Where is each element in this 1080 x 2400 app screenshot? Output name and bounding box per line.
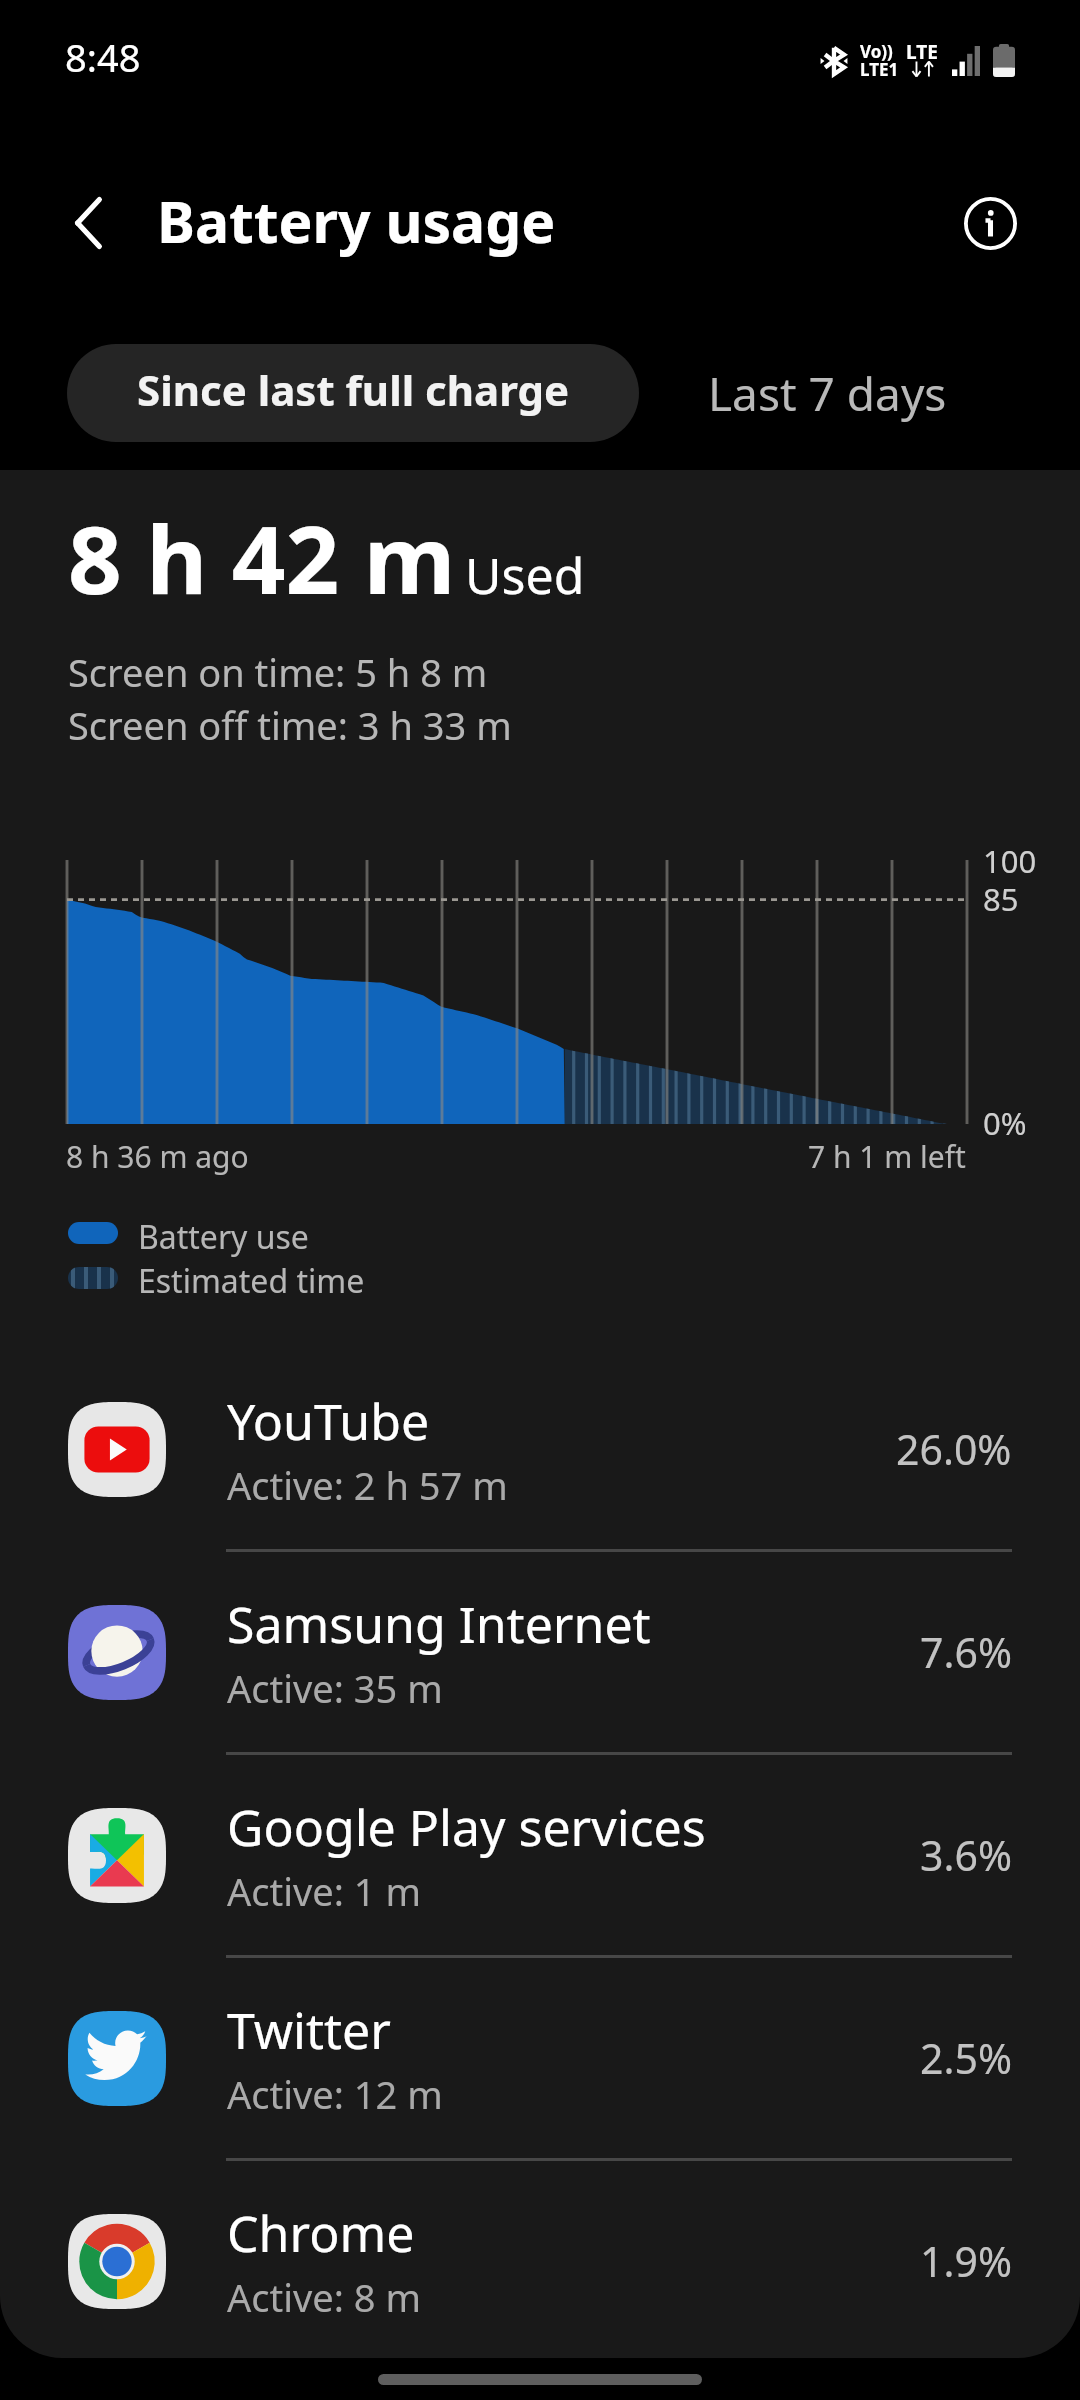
staticText: Battery use xyxy=(138,1215,309,1259)
staticText: 8 h 36 m ago xyxy=(66,1136,249,1177)
staticText: 85 xyxy=(983,878,1019,920)
button[interactable]: Samsung Internet xyxy=(0,1552,1080,1752)
staticText: Screen off time: 3 h 33 m xyxy=(68,699,512,751)
staticText: Chrome xyxy=(227,2199,415,2267)
staticText: 8 h 42 m xyxy=(68,494,456,622)
button[interactable]: Information xyxy=(945,178,1035,268)
staticText: Used xyxy=(465,541,585,609)
staticText: LTE1 xyxy=(860,58,899,81)
staticText: 100 xyxy=(983,840,1037,882)
staticText: Active: 2 h 57 m xyxy=(227,1459,508,1511)
staticText: Last 7 days xyxy=(708,362,947,425)
staticText: 0% xyxy=(983,1102,1027,1144)
staticText: 7 h 1 m left xyxy=(808,1136,966,1177)
staticText: 1.9% xyxy=(920,2233,1012,2289)
button[interactable]: Chrome xyxy=(0,2161,1080,2361)
staticText: YouTube xyxy=(227,1387,430,1455)
staticText: Screen on time: 5 h 8 m xyxy=(68,646,488,698)
staticText: Estimated time xyxy=(138,1259,365,1303)
button[interactable]: Last 7 days xyxy=(675,344,980,442)
staticText: Active: 12 m xyxy=(227,2068,443,2120)
staticText: 7.6% xyxy=(920,1624,1012,1680)
staticText: Active: 35 m xyxy=(227,1662,443,1714)
button[interactable]: YouTube xyxy=(0,1349,1080,1549)
staticText: Google Play services xyxy=(227,1793,706,1861)
button[interactable]: Twitter xyxy=(0,1958,1080,2158)
staticText: Active: 8 m xyxy=(227,2271,421,2323)
button[interactable]: Google Play services xyxy=(0,1755,1080,1955)
staticText: Active: 1 m xyxy=(227,1865,421,1917)
staticText: 3.6% xyxy=(920,1827,1012,1883)
staticText: Since last full charge xyxy=(137,361,570,418)
staticText: Vo)) xyxy=(860,40,893,63)
staticText: Battery usage xyxy=(157,182,556,260)
staticText: Samsung Internet xyxy=(227,1590,651,1658)
staticText: Twitter xyxy=(227,1996,391,2064)
button[interactable]: Navigate up xyxy=(43,178,133,268)
button[interactable]: Since last full charge xyxy=(67,344,639,442)
staticText: 26.0% xyxy=(896,1421,1012,1477)
staticText: 8:48 xyxy=(65,31,141,83)
staticText: LTE xyxy=(906,39,938,65)
staticText: 2.5% xyxy=(920,2030,1012,2086)
